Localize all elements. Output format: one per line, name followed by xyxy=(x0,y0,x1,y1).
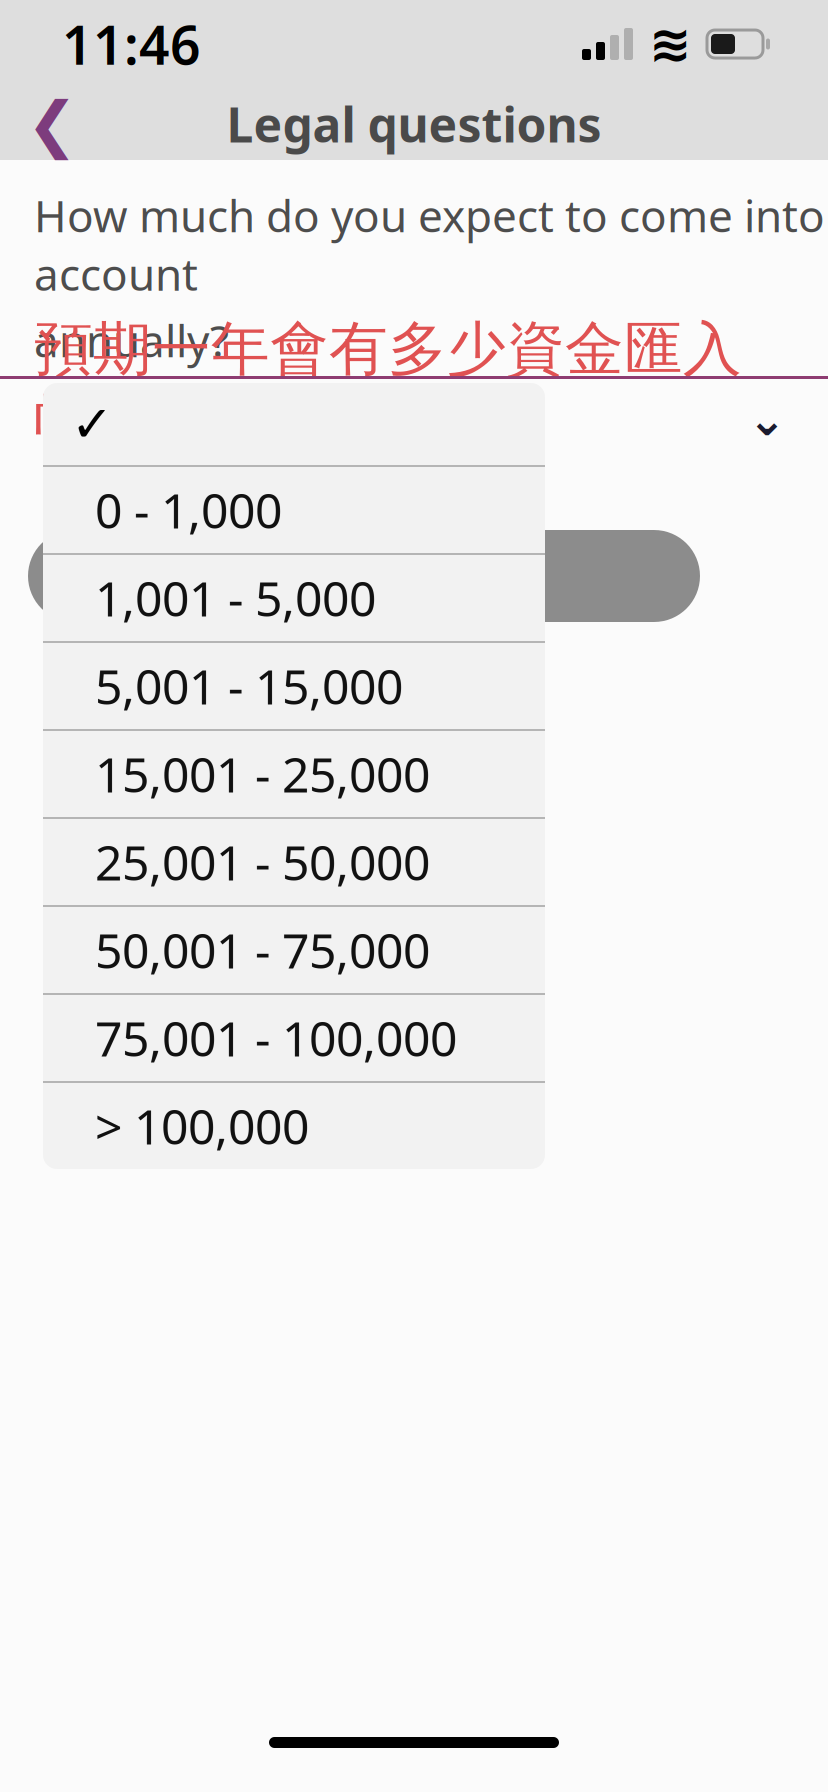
button[interactable]: 1,001 - 5,000 xyxy=(43,555,545,641)
button[interactable]: Back xyxy=(10,88,94,160)
staticText: 15,001 - 25,000 xyxy=(95,742,430,806)
staticText: 預期一年會有多少資金匯入帳戶？ xyxy=(34,313,742,457)
button[interactable]: 75,001 - 100,000 xyxy=(43,995,545,1081)
staticText: 50,001 - 75,000 xyxy=(95,918,430,982)
staticText: 75,001 - 100,000 xyxy=(95,1006,457,1070)
staticText: 5,001 - 15,000 xyxy=(95,654,403,718)
staticText: ⌄ xyxy=(748,394,786,445)
button[interactable]: 50,001 - 75,000 xyxy=(43,907,545,993)
staticText: ❮ xyxy=(26,89,77,159)
button[interactable]: 15,001 - 25,000 xyxy=(43,731,545,817)
staticText: ≋ xyxy=(649,15,691,73)
staticText: annually? xyxy=(34,311,229,369)
button[interactable]: 5,001 - 15,000 xyxy=(43,643,545,729)
button[interactable]: No selection xyxy=(43,383,545,465)
button[interactable]: 25,001 - 50,000 xyxy=(43,819,545,905)
button[interactable]: Annual amount selector xyxy=(34,369,796,457)
staticText: Legal questions xyxy=(226,92,601,156)
button[interactable]: 0 - 1,000 xyxy=(43,467,545,553)
staticText: 1,001 - 5,000 xyxy=(95,566,376,630)
staticText: 0 - 1,000 xyxy=(95,478,282,542)
staticText: 11:46 xyxy=(62,9,201,79)
staticText: 25,001 - 50,000 xyxy=(95,830,430,894)
button[interactable]: > 100,000 xyxy=(43,1083,545,1169)
staticText: ✓ xyxy=(71,395,113,453)
staticText: How much do you expect to come into acco… xyxy=(34,186,825,303)
staticText: > 100,000 xyxy=(95,1094,309,1158)
